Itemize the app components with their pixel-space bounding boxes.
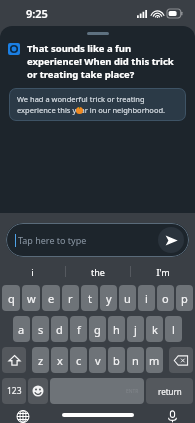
staticText: That sounds like a fun experience! When …: [27, 42, 185, 81]
staticText: s: [38, 322, 44, 337]
staticText: q: [8, 291, 15, 306]
button[interactable]: w: [22, 285, 40, 311]
button[interactable]: q: [2, 285, 20, 311]
button[interactable]: u: [119, 285, 136, 311]
staticText: k: [152, 322, 158, 337]
button[interactable]: Shift: [2, 347, 26, 373]
button[interactable]: n: [127, 347, 144, 373]
button[interactable]: t: [81, 285, 98, 311]
button[interactable]: y: [100, 285, 117, 311]
staticText: g: [94, 322, 101, 337]
staticText: i: [31, 266, 34, 278]
button[interactable]: Tap here to type: [6, 223, 189, 257]
button[interactable]: p: [176, 285, 193, 311]
staticText: return: [158, 386, 182, 397]
staticText: the: [91, 266, 105, 278]
button[interactable]: d: [51, 316, 68, 342]
staticText: e: [48, 291, 55, 306]
button[interactable]: Dictation: [163, 410, 181, 423]
staticText: h: [113, 322, 120, 337]
button[interactable]: z: [32, 347, 49, 373]
button[interactable]: c: [70, 347, 87, 373]
button[interactable]: a: [13, 316, 30, 342]
button[interactable]: j: [127, 316, 144, 342]
staticText: z: [38, 353, 44, 368]
staticText: 123: [7, 385, 22, 397]
staticText: m: [149, 353, 160, 368]
button[interactable]: Send: [158, 227, 184, 253]
staticText: p: [181, 291, 188, 306]
staticText: f: [77, 322, 81, 337]
button[interactable]: l: [165, 316, 182, 342]
staticText: n: [132, 353, 139, 368]
button[interactable]: h: [108, 316, 125, 342]
button[interactable]: ENTR: [50, 378, 144, 404]
staticText: o: [162, 291, 169, 306]
staticText: We had a wonderful trick or treating exp…: [17, 94, 178, 115]
button[interactable]: v: [89, 347, 106, 373]
button[interactable]: Emoji: [28, 378, 48, 404]
button[interactable]: b: [108, 347, 125, 373]
button[interactable]: e: [42, 285, 60, 311]
staticText: b: [113, 353, 120, 368]
button[interactable]: r: [62, 285, 79, 311]
staticText: c: [76, 353, 82, 368]
button[interactable]: k: [146, 316, 163, 342]
button[interactable]: Backspace: [169, 347, 193, 373]
button[interactable]: f: [70, 316, 87, 342]
staticText: r: [68, 291, 73, 306]
button[interactable]: i: [138, 285, 155, 311]
staticText: x: [57, 353, 63, 368]
staticText: i: [145, 291, 148, 306]
button[interactable]: g: [89, 316, 106, 342]
staticText: v: [95, 353, 101, 368]
staticText: t: [88, 291, 92, 306]
button[interactable]: m: [146, 347, 163, 373]
staticText: j: [134, 322, 137, 337]
staticText: a: [18, 322, 25, 337]
button[interactable]: the: [66, 261, 130, 282]
staticText: l: [172, 322, 175, 337]
staticText: y: [106, 291, 112, 306]
button[interactable]: x: [51, 347, 68, 373]
button[interactable]: 123: [2, 378, 26, 404]
staticText: Tap here to type: [18, 234, 87, 246]
staticText: w: [27, 291, 36, 306]
button[interactable]: Change keyboard language: [14, 410, 32, 423]
staticText: u: [124, 291, 131, 306]
button[interactable]: o: [157, 285, 174, 311]
staticText: ENTR: [126, 388, 139, 395]
button[interactable]: return: [146, 378, 193, 404]
staticText: I'm: [156, 266, 170, 278]
staticText: 9:25: [26, 6, 48, 21]
button[interactable]: i: [0, 261, 65, 282]
button[interactable]: I'm: [131, 261, 195, 282]
staticText: d: [56, 322, 63, 337]
button[interactable]: s: [32, 316, 49, 342]
